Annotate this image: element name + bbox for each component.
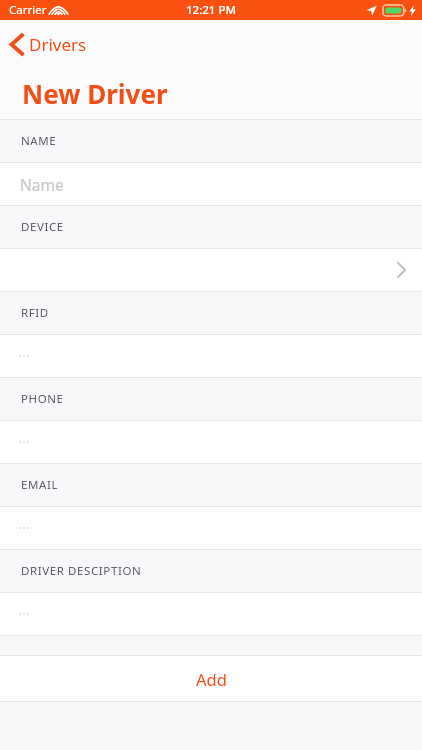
staticText: NAME [21,133,57,149]
staticText: New Driver [22,76,168,111]
staticText: Drivers [29,33,87,56]
staticText: Add [196,668,227,690]
staticText: PHONE [21,391,64,407]
button[interactable]: Drivers [0,27,99,62]
other: Select device [397,262,406,278]
staticText: RFID [21,305,49,321]
staticText: 12:21 PM [186,2,237,18]
button[interactable]: Add [0,656,422,701]
button[interactable]: Name [0,163,422,205]
staticText: EMAIL [21,477,59,493]
staticText: DRIVER DESCIPTION [21,563,142,579]
staticText: Name [20,174,64,195]
staticText: Carrier [9,2,47,18]
staticText: DEVICE [21,219,64,235]
